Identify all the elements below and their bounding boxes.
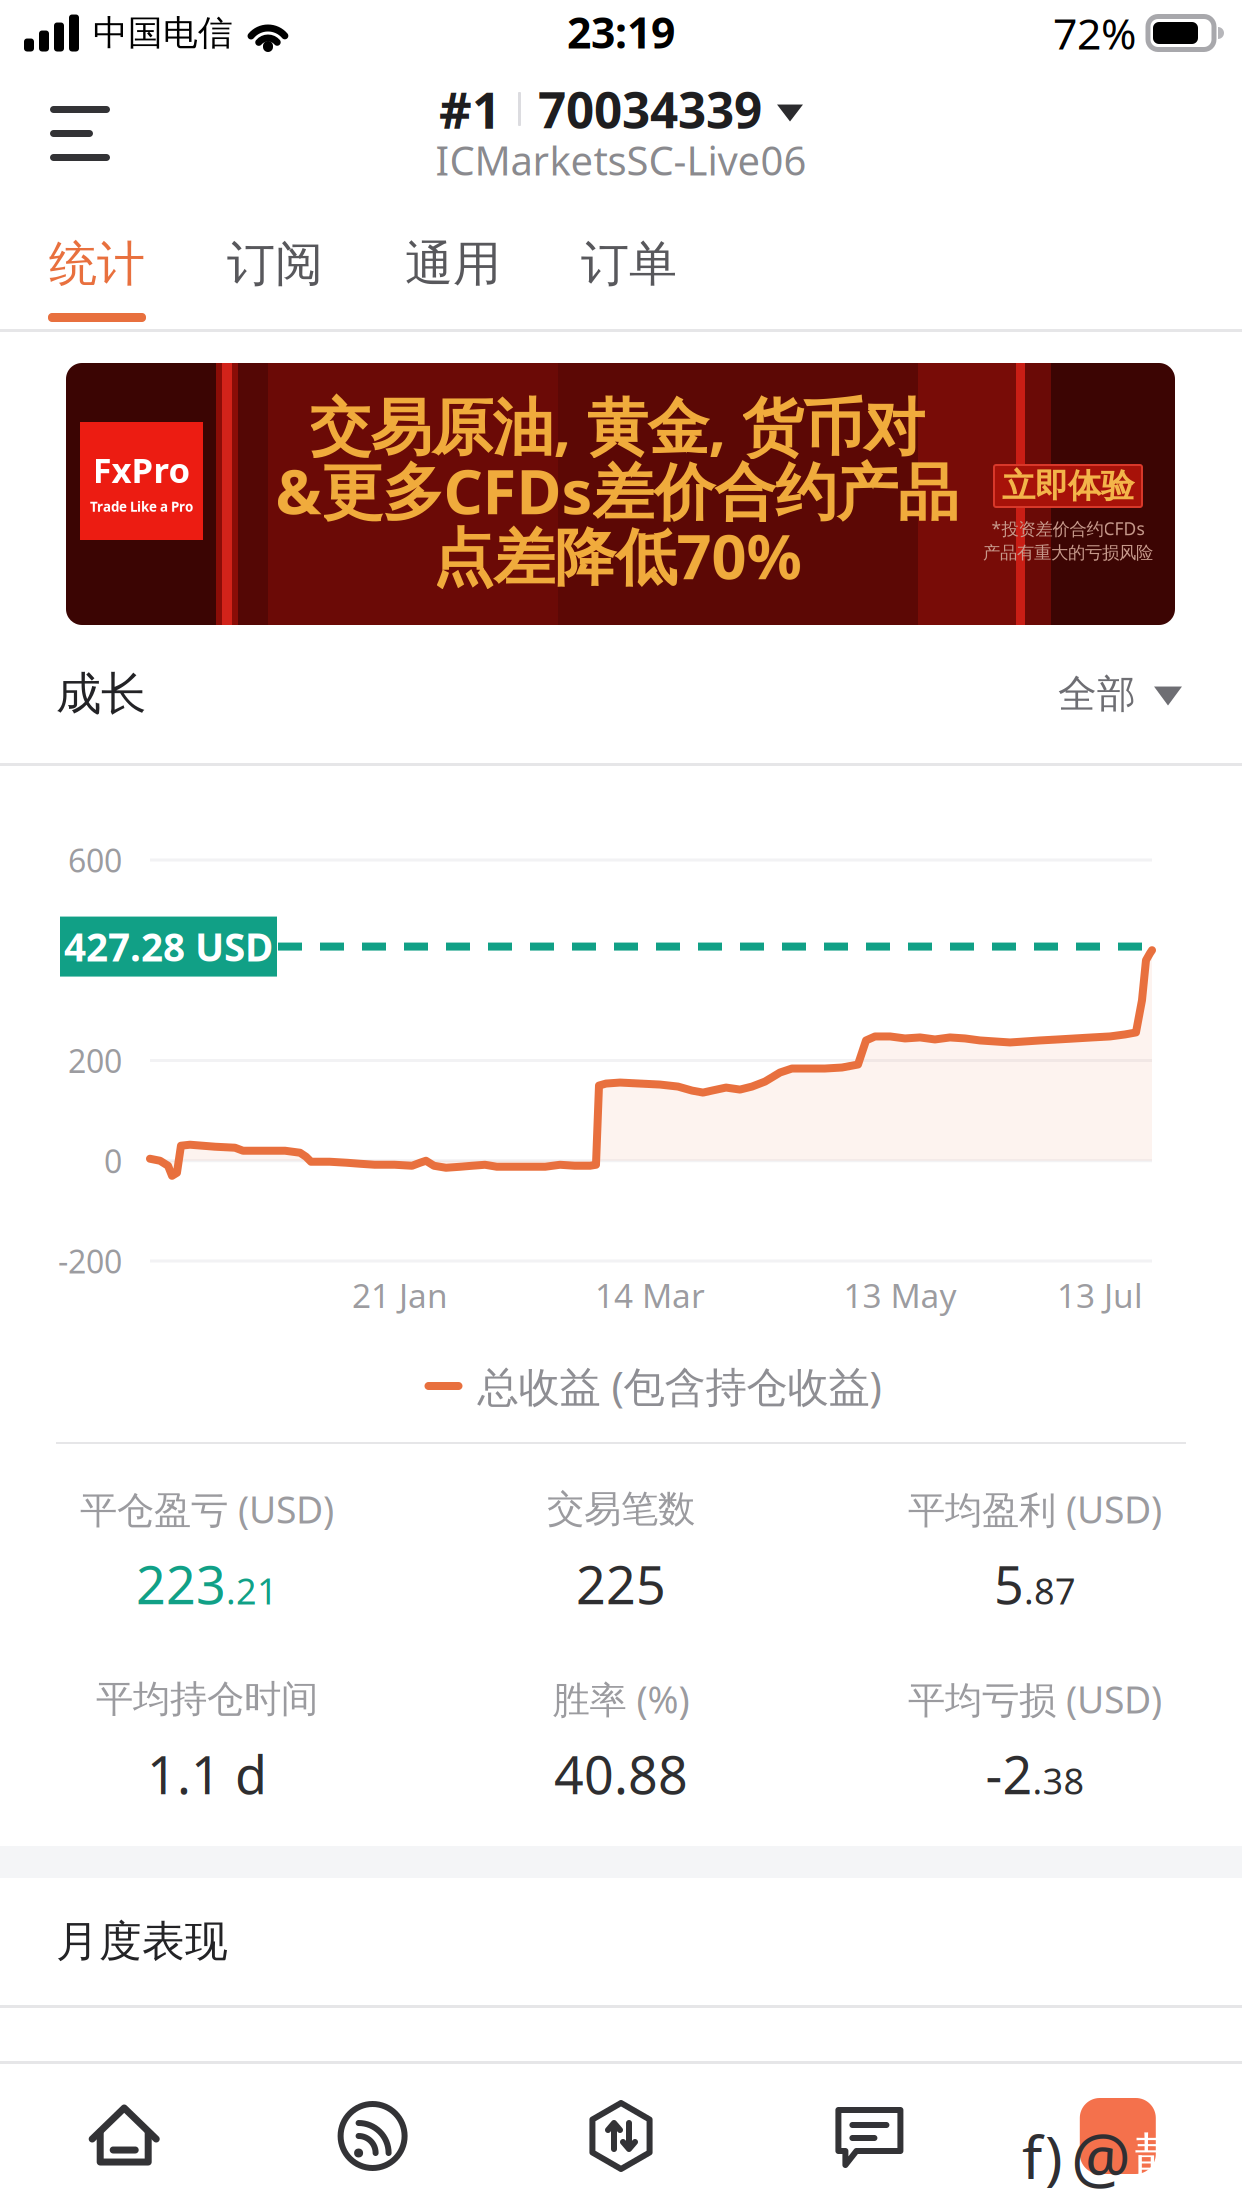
button[interactable]: 全部	[1038, 646, 1242, 742]
staticText: 全部	[1058, 670, 1136, 718]
staticText: Trade Like a Pro	[90, 498, 193, 515]
staticText: 225	[576, 1549, 666, 1619]
button[interactable]: 统计	[0, 205, 226, 329]
staticText: .38	[1032, 1757, 1084, 1804]
staticText: 1.1 d	[147, 1739, 267, 1809]
staticText: 13 May	[843, 1273, 956, 1317]
staticText: .87	[1024, 1567, 1076, 1614]
button[interactable]: 交易	[497, 2064, 745, 2208]
staticText: 0	[104, 1139, 122, 1182]
staticText: FxPro	[92, 447, 190, 493]
staticText: 交易原油, 黄金, 货币对	[309, 385, 924, 466]
staticText: 通用	[405, 234, 501, 293]
button[interactable]: 订单	[580, 205, 678, 329]
staticText: @	[1071, 2112, 1131, 2200]
staticText: 200	[68, 1039, 122, 1082]
button[interactable]: 消息	[745, 2064, 994, 2208]
staticText: 点差降低70%	[432, 515, 801, 596]
staticText: 5	[994, 1549, 1024, 1619]
staticText: 21 Jan	[352, 1273, 448, 1317]
staticText: -200	[58, 1240, 122, 1282]
staticText: 427.28 USD	[64, 921, 273, 972]
staticText: 223	[136, 1549, 226, 1619]
staticText: 立即体验	[1002, 465, 1134, 506]
button[interactable]: 资讯	[248, 2064, 497, 2208]
staticText: 成长	[56, 666, 146, 722]
staticText: 平均亏损 (USD)	[908, 1674, 1162, 1724]
staticText: 72%	[1053, 5, 1136, 61]
staticText: 总收益 (包含持仓收益)	[477, 1359, 881, 1413]
staticText: 中国电信	[93, 12, 233, 54]
staticText: 平仓盈亏 (USD)	[80, 1484, 334, 1534]
staticText: 订单	[581, 234, 677, 293]
staticText: 平均持仓时间	[96, 1676, 318, 1722]
button[interactable]: 通用	[404, 205, 580, 329]
staticText: f)	[1022, 2117, 1063, 2195]
staticText: 40.88	[554, 1739, 688, 1809]
staticText: 600	[68, 839, 122, 881]
staticText: *投资差价合约CFDs	[991, 517, 1144, 540]
staticText: 23:19	[567, 4, 675, 60]
staticText: 产品有重大的亏损风险	[983, 542, 1153, 563]
button[interactable]: 设置	[994, 2064, 1242, 2208]
staticText: 月度表现	[56, 1915, 228, 1968]
staticText: 70034339	[538, 76, 762, 142]
staticText: -2	[985, 1739, 1032, 1809]
staticText: 13 Jul	[1057, 1273, 1143, 1317]
staticText: 平均盈利 (USD)	[908, 1484, 1162, 1534]
staticText: &更多CFDs差价合约产品	[275, 450, 958, 531]
staticText: 静音	[1135, 2123, 1241, 2189]
staticText: 统计	[49, 234, 145, 293]
staticText: 14 Mar	[595, 1273, 705, 1317]
button[interactable]: 菜单	[0, 66, 150, 205]
staticText: 订阅	[227, 234, 323, 293]
button[interactable]: FxPro 广告	[0, 332, 1242, 625]
button[interactable]: 订阅	[226, 205, 404, 329]
staticText: 交易笔数	[547, 1486, 695, 1532]
button[interactable]: 首页	[0, 2064, 248, 2208]
staticText: 胜率 (%)	[552, 1674, 689, 1724]
staticText: #1	[439, 75, 501, 143]
staticText: .21	[226, 1567, 278, 1614]
staticText: ICMarketsSC-Live06	[435, 133, 806, 186]
